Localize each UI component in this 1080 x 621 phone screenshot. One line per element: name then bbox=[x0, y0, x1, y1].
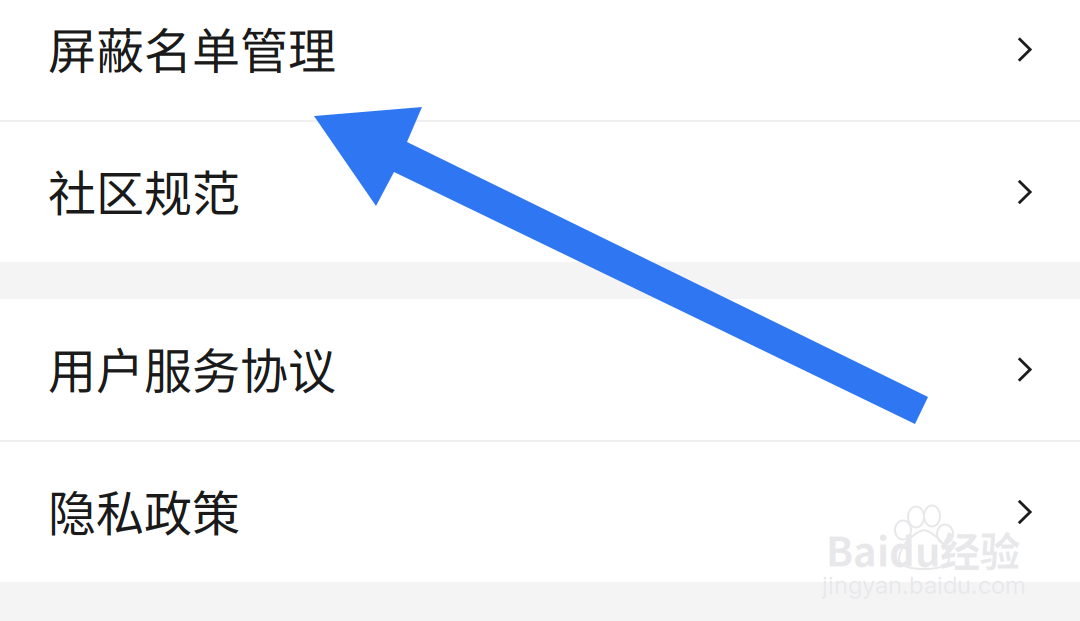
staticText: 用户服务协议 bbox=[48, 333, 336, 402]
button[interactable]: 隐私政策 bbox=[0, 442, 1080, 582]
button[interactable]: 社区规范 bbox=[0, 122, 1080, 262]
button[interactable]: 用户服务协议 bbox=[0, 299, 1080, 440]
staticText: Baidu经验 bbox=[826, 520, 1020, 578]
staticText: 屏蔽名单管理 bbox=[48, 13, 336, 82]
staticText: 社区规范 bbox=[48, 155, 240, 225]
staticText: 隐私政策 bbox=[48, 475, 240, 545]
button[interactable]: 屏蔽名单管理 bbox=[0, 0, 1080, 120]
staticText: jingyan.baidu.com bbox=[822, 570, 1026, 599]
